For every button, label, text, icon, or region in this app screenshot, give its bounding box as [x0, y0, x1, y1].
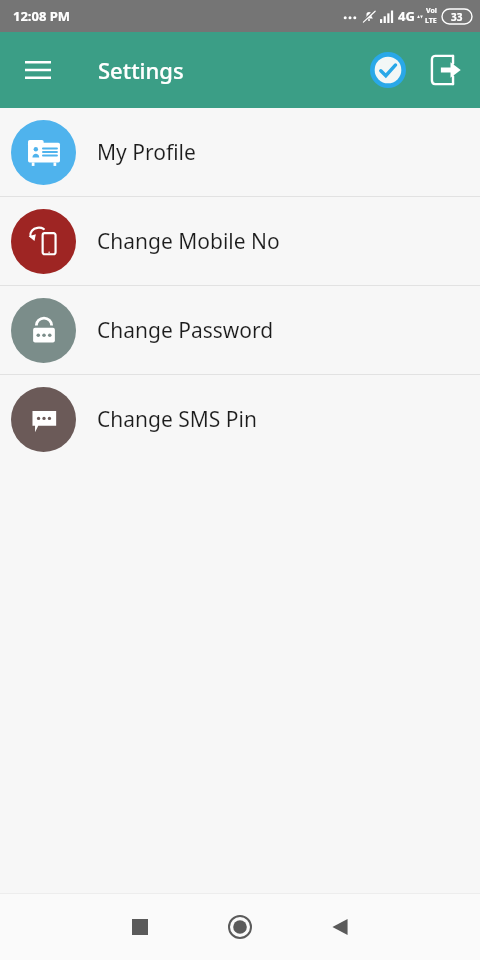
button[interactable]: Change Password	[0, 286, 480, 374]
button[interactable]: Back	[308, 895, 372, 959]
staticText: Vol	[426, 6, 437, 16]
button[interactable]: My Profile	[0, 108, 480, 196]
staticText: 4G	[398, 7, 415, 25]
button[interactable]: Verified	[364, 46, 412, 94]
staticText: Change SMS Pin	[97, 405, 257, 434]
staticText: 12:08 PM	[13, 7, 71, 25]
button[interactable]: Recent apps	[108, 895, 172, 959]
staticText: My Profile	[97, 138, 196, 167]
staticText: LTE	[425, 16, 437, 26]
button[interactable]: Change SMS Pin	[0, 375, 480, 464]
button[interactable]: Open navigation menu	[14, 46, 62, 94]
staticText: Change Password	[97, 316, 274, 345]
staticText: Change Mobile No	[97, 227, 280, 256]
button[interactable]: Change Mobile No	[0, 197, 480, 285]
staticText: 33	[451, 10, 463, 24]
button[interactable]: Log out	[422, 46, 470, 94]
button[interactable]: Home	[208, 895, 272, 959]
staticText: Settings	[98, 55, 184, 85]
